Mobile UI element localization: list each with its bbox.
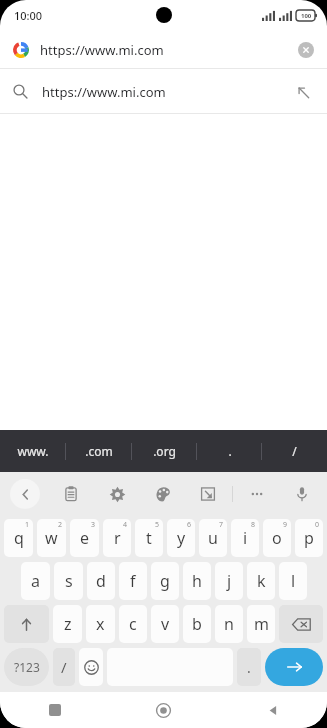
- button[interactable]: x: [86, 605, 115, 643]
- button[interactable]: y: [167, 519, 195, 557]
- staticText: 100: [301, 12, 312, 20]
- button[interactable]: Go: [265, 648, 323, 686]
- staticText: e: [80, 527, 90, 549]
- button[interactable]: /: [262, 430, 327, 472]
- button[interactable]: w: [37, 519, 66, 557]
- staticText: h: [192, 570, 202, 592]
- button[interactable]: Voice input: [287, 479, 317, 509]
- staticText: .org: [153, 443, 176, 459]
- staticText: a: [31, 570, 40, 592]
- button[interactable]: Back: [10, 479, 40, 509]
- staticText: r: [114, 527, 121, 549]
- staticText: 0: [315, 520, 320, 530]
- staticText: 8: [251, 520, 256, 530]
- staticText: d: [96, 570, 106, 592]
- staticText: u: [208, 527, 218, 549]
- button[interactable]: .: [237, 648, 261, 686]
- button[interactable]: .: [197, 430, 262, 472]
- button[interactable]: i: [231, 519, 259, 557]
- button[interactable]: r: [103, 519, 131, 557]
- staticText: /: [292, 443, 297, 459]
- button[interactable]: Recents: [0, 692, 109, 728]
- staticText: l: [291, 570, 296, 592]
- button[interactable]: h: [183, 562, 211, 600]
- staticText: 5: [155, 520, 160, 530]
- button[interactable]: z: [53, 605, 82, 643]
- button[interactable]: u: [199, 519, 227, 557]
- staticText: s: [65, 570, 73, 592]
- button[interactable]: j: [215, 562, 243, 600]
- staticText: k: [257, 570, 266, 592]
- staticText: z: [64, 613, 72, 635]
- staticText: y: [177, 527, 186, 549]
- staticText: x: [96, 613, 105, 635]
- staticText: n: [224, 613, 234, 635]
- staticText: b: [192, 613, 202, 635]
- staticText: j: [227, 570, 232, 592]
- staticText: 2: [58, 520, 63, 530]
- button[interactable]: d: [87, 562, 115, 600]
- button[interactable]: .com: [66, 430, 132, 472]
- button[interactable]: v: [151, 605, 179, 643]
- button[interactable]: Home: [109, 692, 218, 728]
- button[interactable]: Clipboard: [56, 479, 86, 509]
- button[interactable]: c: [119, 605, 147, 643]
- staticText: f: [130, 570, 136, 592]
- staticText: i: [243, 527, 248, 549]
- button[interactable]: .org: [132, 430, 197, 472]
- staticText: 4: [123, 520, 128, 530]
- button[interactable]: ?123: [4, 648, 49, 686]
- button[interactable]: https://www.mi.com: [0, 69, 327, 114]
- button[interactable]: https://www.mi.com: [0, 30, 327, 69]
- button[interactable]: m: [247, 605, 275, 643]
- staticText: 10:00: [14, 8, 43, 23]
- button[interactable]: Shift: [4, 605, 49, 643]
- button[interactable]: o: [263, 519, 291, 557]
- button[interactable]: /: [53, 648, 75, 686]
- staticText: w: [45, 527, 58, 549]
- staticText: /: [61, 657, 67, 677]
- staticText: v: [161, 613, 170, 635]
- button[interactable]: a: [21, 562, 50, 600]
- staticText: .com: [85, 443, 113, 459]
- staticText: https://www.mi.com: [40, 41, 164, 59]
- staticText: www.: [17, 443, 49, 459]
- button[interactable]: www.: [0, 430, 66, 472]
- button[interactable]: Fill query: [292, 81, 314, 103]
- staticText: c: [129, 613, 137, 635]
- staticText: m: [254, 613, 269, 635]
- button[interactable]: f: [119, 562, 147, 600]
- button[interactable]: Theme: [148, 479, 178, 509]
- button[interactable]: Back: [218, 692, 327, 728]
- staticText: .: [247, 658, 251, 677]
- button[interactable]: b: [183, 605, 211, 643]
- staticText: 1: [25, 520, 30, 530]
- button[interactable]: t: [135, 519, 163, 557]
- button[interactable]: Clear: [298, 42, 314, 58]
- button[interactable]: p: [295, 519, 323, 557]
- button[interactable]: Emoji: [79, 648, 103, 686]
- button[interactable]: l: [279, 562, 307, 600]
- staticText: g: [160, 570, 170, 592]
- button[interactable]: Settings: [102, 479, 132, 509]
- button[interactable]: s: [54, 562, 83, 600]
- staticText: ?123: [14, 659, 40, 675]
- button[interactable]: More options: [242, 479, 272, 509]
- button[interactable]: Backspace: [279, 605, 323, 643]
- button[interactable]: Resize keyboard: [193, 479, 223, 509]
- staticText: .: [228, 443, 232, 459]
- button[interactable]: g: [151, 562, 179, 600]
- button[interactable]: e: [70, 519, 99, 557]
- button[interactable]: k: [247, 562, 275, 600]
- staticText: 9: [283, 520, 288, 530]
- staticText: t: [146, 527, 152, 549]
- staticText: q: [14, 527, 24, 549]
- staticText: https://www.mi.com: [42, 83, 166, 101]
- button[interactable]: q: [4, 519, 33, 557]
- staticText: p: [304, 527, 314, 549]
- staticText: 6: [187, 520, 192, 530]
- button[interactable]: n: [215, 605, 243, 643]
- staticText: o: [272, 527, 282, 549]
- staticText: 3: [91, 520, 96, 530]
